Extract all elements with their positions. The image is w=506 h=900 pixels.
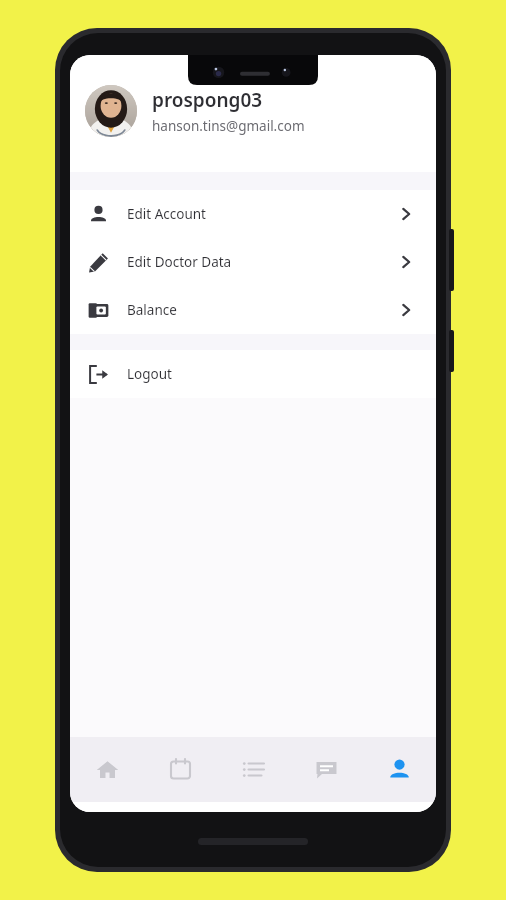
- staticText: Edit Account: [127, 205, 206, 223]
- button[interactable]: Logout: [70, 350, 436, 398]
- button[interactable]: List: [217, 737, 290, 802]
- button[interactable]: Balance: [70, 286, 436, 334]
- button[interactable]: Messages: [290, 737, 363, 802]
- staticText: Balance: [127, 301, 177, 319]
- staticText: Logout: [127, 365, 172, 383]
- staticText: Edit Doctor Data: [127, 253, 232, 271]
- button[interactable]: Profile: [363, 737, 436, 802]
- staticText: prospong03: [152, 87, 263, 113]
- button[interactable]: Edit Doctor Data: [70, 238, 436, 286]
- button[interactable]: Edit Account: [70, 190, 436, 238]
- staticText: hanson.tins@gmail.com: [152, 117, 305, 135]
- button[interactable]: Home: [70, 737, 144, 802]
- button[interactable]: Calendar: [144, 737, 217, 802]
